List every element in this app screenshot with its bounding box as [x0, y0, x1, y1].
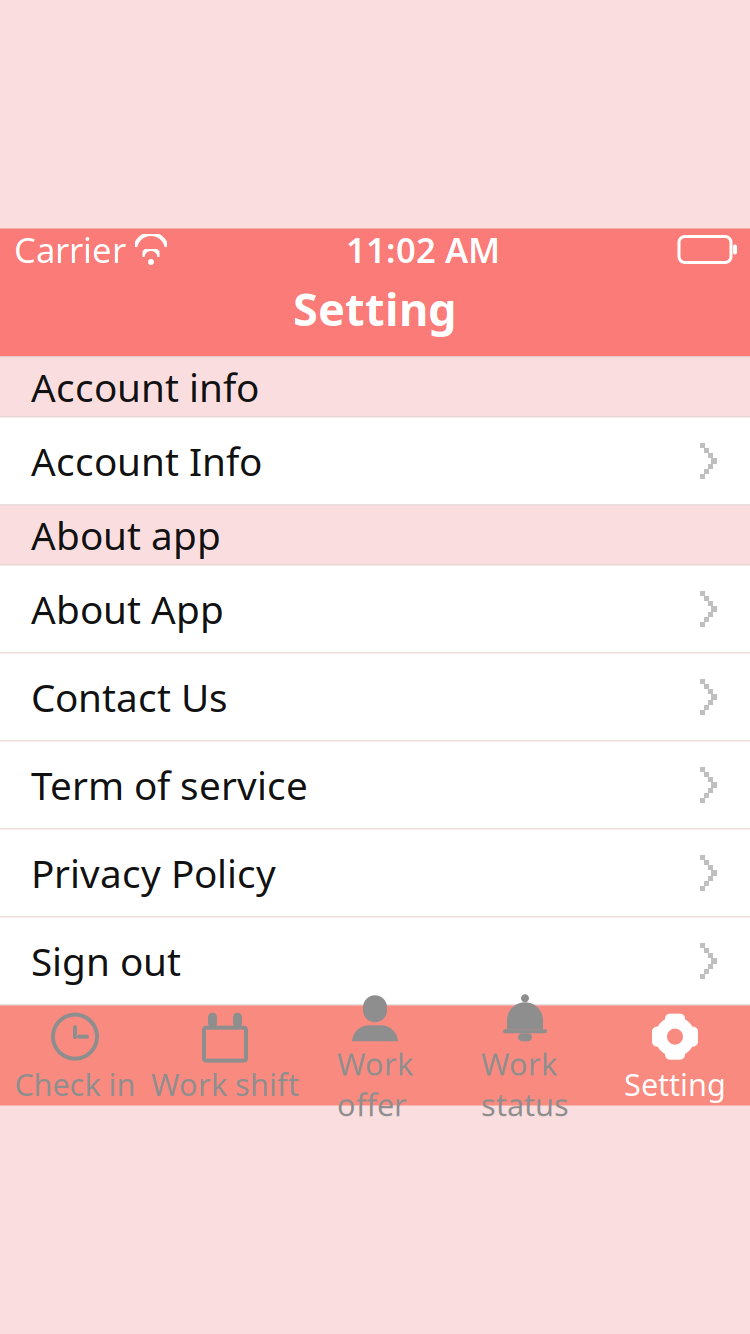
staticText: Work offer	[337, 1043, 413, 1125]
button[interactable]: Work offer	[300, 1005, 450, 1105]
staticText: Privacy Policy	[31, 847, 276, 899]
staticText: About App	[31, 583, 224, 635]
button[interactable]: Account Info	[0, 417, 750, 505]
staticText: Contact Us	[31, 671, 228, 723]
staticText: Check in	[14, 1064, 135, 1104]
button[interactable]: Sign out	[0, 917, 750, 1005]
staticText: Work status	[481, 1043, 569, 1125]
button[interactable]: Contact Us	[0, 653, 750, 741]
staticText: Carrier	[14, 226, 126, 272]
staticText: About app	[31, 509, 221, 561]
staticText: Account Info	[31, 435, 262, 487]
staticText: Setting	[624, 1064, 726, 1104]
button[interactable]: Setting	[600, 1005, 750, 1105]
staticText: Term of service	[31, 759, 308, 811]
button[interactable]: Work status	[450, 1005, 600, 1105]
staticText: 11:02 AM	[346, 226, 500, 272]
staticText: Work shift	[151, 1064, 299, 1104]
staticText: Sign out	[31, 935, 181, 987]
button[interactable]: Privacy Policy	[0, 829, 750, 917]
button[interactable]: About App	[0, 565, 750, 653]
staticText: Setting	[293, 278, 457, 338]
button[interactable]: Check in	[0, 1005, 150, 1105]
staticText: Account info	[31, 361, 259, 413]
button[interactable]: Work shift	[150, 1005, 300, 1105]
button[interactable]: Term of service	[0, 741, 750, 829]
